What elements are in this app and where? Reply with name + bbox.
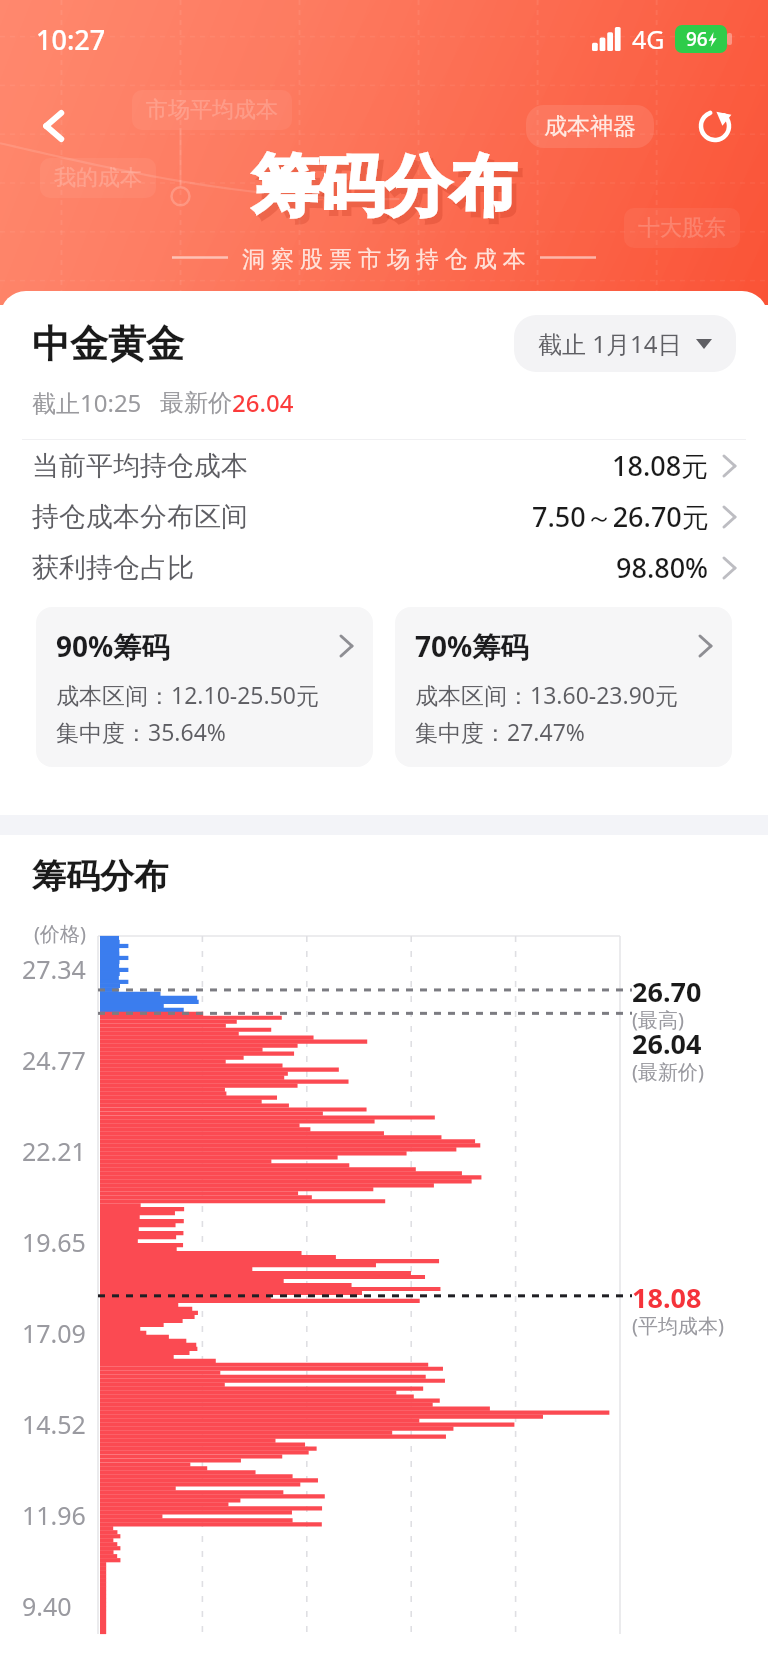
staticText: 18.08 <box>632 1279 702 1316</box>
button[interactable]: 当前平均持仓成本 <box>0 440 768 491</box>
staticText: 26.04 <box>632 1025 702 1062</box>
staticText: (平均成本) <box>632 1312 724 1339</box>
staticText: 26.04 <box>232 386 294 419</box>
button[interactable]: 90%筹码 <box>36 607 373 767</box>
button[interactable]: Refresh <box>690 101 740 151</box>
staticText: 获利持仓占比 <box>32 551 194 585</box>
staticText: 18.08元 <box>612 447 709 484</box>
button[interactable]: 持仓成本分布区间 <box>0 491 768 542</box>
staticText: 洞 察 股 票 市 场 持 仓 成 本 <box>242 242 526 273</box>
staticText: 9.40 <box>22 1589 72 1623</box>
staticText: 十大股东 <box>638 214 726 242</box>
staticText: 70%筹码 <box>415 627 529 665</box>
staticText: 22.21 <box>22 1134 86 1168</box>
button[interactable]: 获利持仓占比 <box>0 542 768 593</box>
staticText: 最新价 <box>160 388 232 418</box>
staticText: 7.50～26.70元 <box>532 498 709 535</box>
staticText: 17.09 <box>22 1316 86 1350</box>
staticText: (最新价) <box>632 1058 704 1085</box>
button[interactable]: 70%筹码 <box>395 607 732 767</box>
button[interactable]: 成本神器 <box>526 105 654 148</box>
staticText: 4G <box>632 22 665 56</box>
staticText: 10:27 <box>36 21 106 58</box>
staticText: (价格) <box>34 920 86 947</box>
staticText: 96 <box>686 26 708 52</box>
staticText: 持仓成本分布区间 <box>32 500 248 534</box>
button[interactable]: 截止 1月14日 <box>514 315 736 372</box>
staticText: 截止10:25 <box>32 386 142 419</box>
staticText: 26.70 <box>632 973 702 1010</box>
staticText: 当前平均持仓成本 <box>32 449 248 483</box>
staticText: 成本区间：12.10-25.50元 <box>56 679 319 710</box>
staticText: 98.80% <box>616 549 709 586</box>
staticText: 截止 1月14日 <box>538 327 682 360</box>
staticText: 市场平均成本 <box>146 96 278 124</box>
staticText: 筹码分布 <box>257 151 521 234</box>
staticText: 集中度：27.47% <box>415 716 585 747</box>
staticText: 集中度：35.64% <box>56 716 226 747</box>
staticText: 中金黄金 <box>32 320 184 368</box>
staticText: (最高) <box>632 1006 684 1033</box>
staticText: 19.65 <box>22 1225 86 1259</box>
staticText: 筹码分布 <box>32 855 168 898</box>
staticText: 成本区间：13.60-23.90元 <box>415 679 678 710</box>
staticText: 筹码分布 <box>252 145 516 228</box>
staticText: 成本神器 <box>544 112 636 141</box>
staticText: 我的成本 <box>54 164 142 192</box>
staticText: 24.77 <box>22 1043 86 1077</box>
staticText: 11.96 <box>22 1498 86 1532</box>
staticText: 14.52 <box>22 1407 86 1441</box>
staticText: 90%筹码 <box>56 627 170 665</box>
button[interactable]: Back <box>28 99 82 153</box>
staticText: 27.34 <box>22 952 86 986</box>
